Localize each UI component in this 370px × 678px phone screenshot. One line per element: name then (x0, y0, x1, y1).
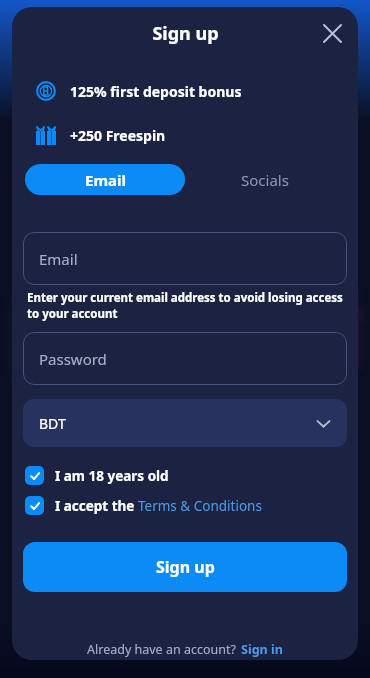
staticText: Terms & Conditions (138, 497, 262, 515)
staticText: Sign up (152, 21, 219, 46)
staticText: Email (85, 170, 126, 190)
button[interactable]: Socials (185, 164, 345, 195)
staticText: Socials (241, 170, 289, 190)
button[interactable]: Select currency (23, 399, 347, 447)
button[interactable]: I accept the (23, 495, 347, 516)
staticText: +250 Freespin (70, 126, 166, 145)
staticText: 125% first deposit bonus (70, 82, 242, 101)
staticText: Enter your current email address to avoi… (27, 290, 345, 321)
staticText: Already have an account? (87, 641, 236, 658)
staticText: I accept the (55, 497, 138, 515)
button[interactable]: Sign in (241, 641, 283, 658)
button[interactable]: Terms & Conditions (138, 497, 262, 515)
button[interactable]: Sign up (23, 542, 347, 592)
staticText: Email (39, 249, 78, 269)
staticText: BDT (39, 414, 66, 433)
staticText: I am 18 years old (55, 467, 169, 485)
button[interactable]: I am 18 years old (23, 465, 347, 486)
button[interactable]: Password (23, 332, 347, 385)
staticText: Sign in (241, 641, 283, 658)
staticText: Password (39, 349, 107, 369)
button[interactable]: Email (23, 232, 347, 285)
staticText: Sign up (156, 556, 215, 578)
button[interactable]: Email (25, 164, 185, 195)
button[interactable]: Close (312, 13, 352, 53)
